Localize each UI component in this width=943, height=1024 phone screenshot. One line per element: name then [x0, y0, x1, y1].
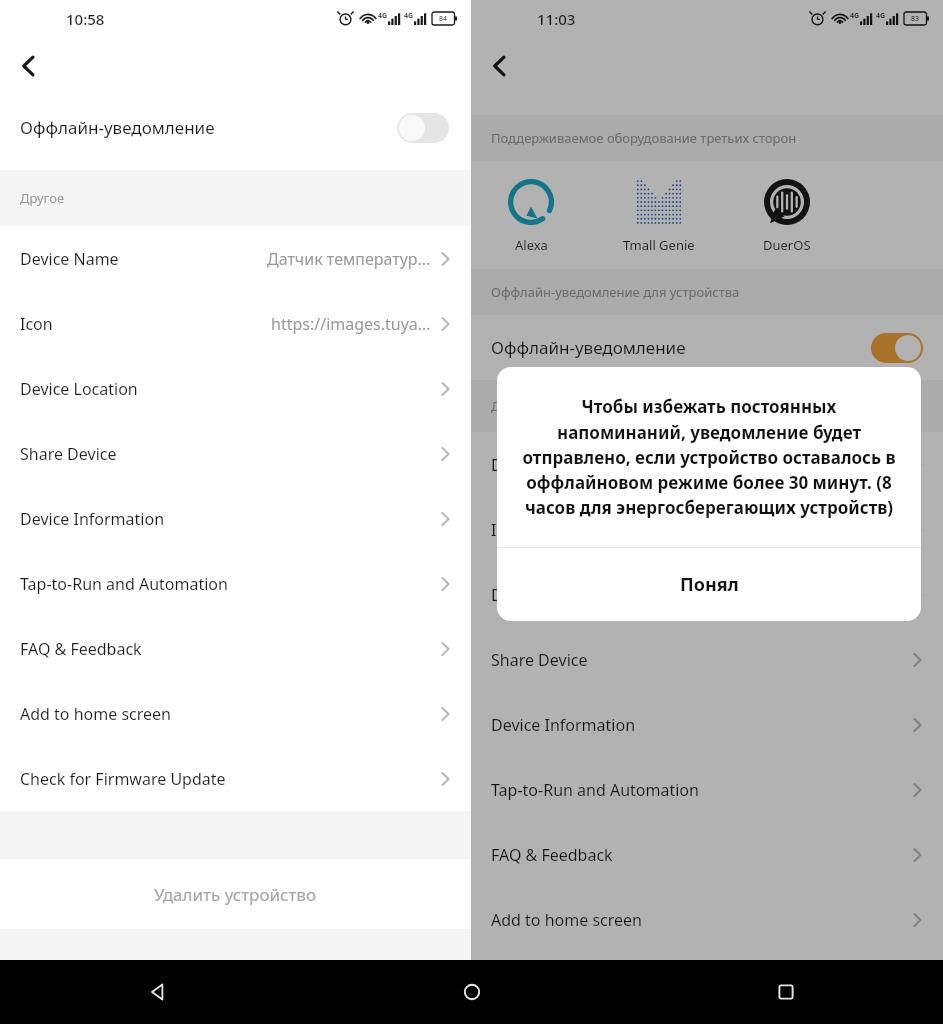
staticText: Check for Firmware Update	[20, 768, 226, 790]
button[interactable]: Back	[0, 37, 58, 95]
staticText: Оффлайн-уведомление	[491, 336, 686, 359]
button[interactable]: Tmall Genie	[623, 176, 695, 254]
staticText: DuerOS	[763, 236, 811, 254]
button[interactable]: Add to home screen	[0, 681, 471, 746]
staticText: 4G	[404, 11, 414, 21]
staticText: Device Name	[20, 248, 119, 270]
button[interactable]: Device Name	[471, 432, 943, 497]
staticText: Чтобы избежать постоянных напоминаний, у…	[517, 395, 901, 519]
staticText: https://images.tuya…	[271, 313, 431, 335]
staticText: Оффлайн-уведомление для устройства	[491, 283, 740, 301]
button[interactable]: Device Name	[0, 226, 471, 291]
button[interactable]: Home	[315, 960, 629, 1024]
button[interactable]: Device Location	[0, 356, 471, 421]
button[interactable]: Удалить устройство	[0, 859, 471, 929]
button[interactable]: Back	[471, 37, 529, 95]
staticText: Device Information	[20, 508, 165, 530]
button[interactable]: Понял	[497, 548, 921, 621]
staticText: Device Information	[491, 714, 636, 736]
staticText: 11:03	[537, 9, 576, 29]
button[interactable]: Tap-to-Run and Automation	[0, 551, 471, 616]
button[interactable]: Offline notification toggle	[871, 333, 923, 363]
staticText: Оффлайн-уведомление	[20, 116, 215, 139]
staticText: Alexa	[515, 236, 548, 254]
button[interactable]: Оффлайн-уведомление	[471, 315, 943, 380]
button[interactable]: Icon	[0, 291, 471, 356]
button[interactable]: Offline notification toggle	[397, 113, 449, 143]
staticText: Понял	[680, 572, 739, 597]
button[interactable]: Device Location	[471, 562, 943, 627]
staticText: Tap-to-Run and Automation	[491, 779, 699, 801]
button[interactable]: Add to home screen	[471, 887, 943, 952]
button[interactable]: Back	[0, 960, 315, 1024]
staticText: Icon	[491, 519, 524, 541]
staticText: Device Name	[491, 454, 590, 476]
button[interactable]: FAQ & Feedback	[471, 822, 943, 887]
staticText: 84	[439, 14, 448, 24]
button[interactable]: Share Device	[0, 421, 471, 486]
staticText: 4G	[850, 11, 860, 21]
staticText: 4G	[876, 11, 886, 21]
button[interactable]: Device Information	[471, 692, 943, 757]
button[interactable]: Device Information	[0, 486, 471, 551]
staticText: Share Device	[20, 443, 117, 465]
button[interactable]: FAQ & Feedback	[0, 616, 471, 681]
button[interactable]: Icon	[471, 497, 943, 562]
staticText: Другое	[491, 397, 536, 415]
staticText: Tmall Genie	[623, 236, 695, 254]
staticText: FAQ & Feedback	[491, 844, 613, 866]
staticText: FAQ & Feedback	[20, 638, 142, 660]
button[interactable]: Recents	[629, 960, 943, 1024]
button[interactable]: Alexa	[495, 176, 567, 254]
button[interactable]: Share Device	[471, 627, 943, 692]
staticText: 83	[911, 14, 920, 24]
button[interactable]: DuerOS	[751, 176, 823, 254]
staticText: Device Location	[20, 378, 138, 400]
button[interactable]: Check for Firmware Update	[0, 746, 471, 811]
button[interactable]: Tap-to-Run and Automation	[471, 757, 943, 822]
staticText: Поддерживаемое оборудование третьих стор…	[491, 129, 797, 147]
button[interactable]: Оффлайн-уведомление	[0, 95, 471, 160]
staticText: Датчик температур…	[267, 248, 431, 270]
staticText: Add to home screen	[491, 909, 642, 931]
staticText: Tap-to-Run and Automation	[20, 573, 228, 595]
staticText: Другое	[20, 189, 65, 207]
staticText: Датчик темпе…	[783, 454, 903, 476]
staticText: Device Location	[491, 584, 609, 606]
staticText: Share Device	[491, 649, 588, 671]
staticText: Icon	[20, 313, 53, 335]
staticText: Удалить устройство	[154, 883, 317, 906]
staticText: 4G	[378, 11, 388, 21]
staticText: 10:58	[66, 9, 105, 29]
staticText: Add to home screen	[20, 703, 171, 725]
